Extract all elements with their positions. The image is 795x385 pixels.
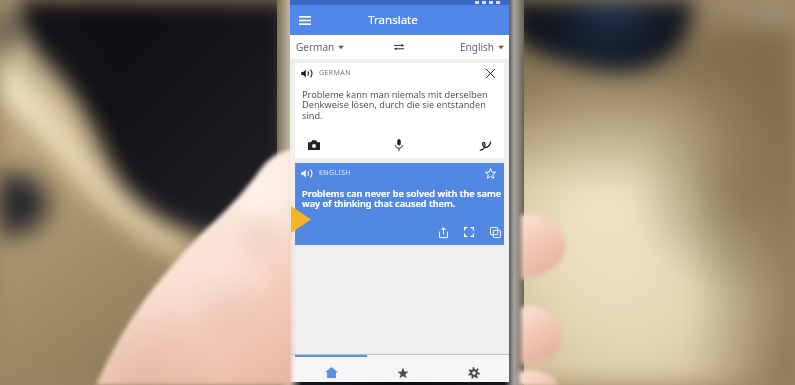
- button[interactable]: Share: [434, 223, 452, 241]
- button[interactable]: Full screen: [460, 223, 478, 241]
- button[interactable]: Clear text: [482, 65, 498, 81]
- staticText: GERMAN: [319, 68, 351, 78]
- staticText: English: [460, 40, 495, 54]
- button[interactable]: Menu: [293, 8, 317, 32]
- button[interactable]: Home: [296, 363, 367, 382]
- staticText: German: [296, 40, 335, 54]
- button[interactable]: Save translation: [482, 165, 498, 181]
- button[interactable]: Swap languages: [387, 35, 411, 59]
- staticText: Translate: [297, 12, 489, 28]
- button[interactable]: Handwriting input: [476, 136, 494, 154]
- button[interactable]: English: [411, 35, 509, 59]
- button[interactable]: Saved phrases: [367, 363, 438, 382]
- button[interactable]: Settings: [438, 363, 509, 382]
- button[interactable]: Camera input: [305, 136, 323, 154]
- button[interactable]: German: [290, 35, 387, 59]
- button[interactable]: Copy: [486, 223, 504, 241]
- staticText: ENGLISH: [319, 168, 352, 178]
- staticText: Problems can never be solved with the sa…: [302, 187, 502, 210]
- staticText: Probleme kann man niemals mit derselben …: [302, 88, 488, 122]
- button[interactable]: Voice input: [390, 136, 408, 154]
